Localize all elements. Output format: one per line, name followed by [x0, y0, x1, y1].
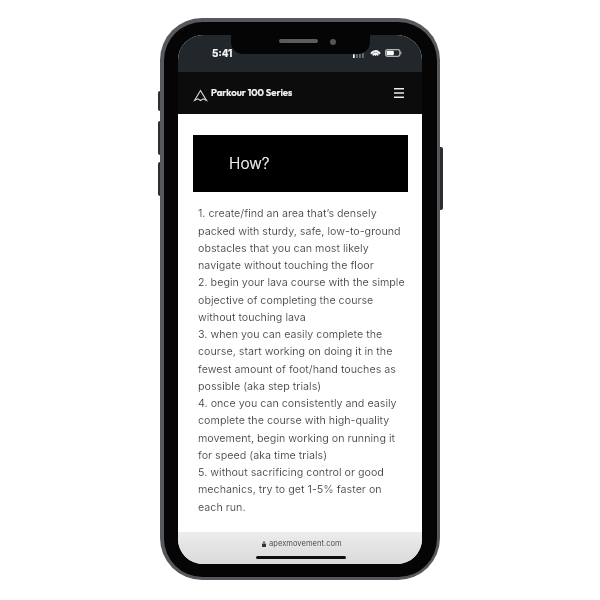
- staticText: 1. create/find an area that’s densely: [198, 207, 377, 220]
- staticText: without touching lava: [198, 311, 306, 324]
- staticText: movement, begin working on running it: [198, 432, 396, 445]
- staticText: navigate without touching the floor: [198, 259, 374, 272]
- staticText: 4. once you can consistently and easily: [198, 397, 397, 410]
- staticText: objective of completing the course: [198, 294, 374, 307]
- staticText: possible (aka step trials): [198, 380, 322, 393]
- staticText: 2. begin your lava course with the simpl…: [198, 276, 405, 289]
- staticText: How?: [229, 154, 270, 173]
- button[interactable]: How?: [193, 135, 408, 192]
- staticText: obstacles that you can most likely: [198, 242, 369, 255]
- staticText: 5. without sacrificing control or good: [198, 466, 384, 479]
- staticText: course, start working on doing it in the: [198, 345, 393, 358]
- button[interactable]: Parkour 100 Series: [194, 85, 294, 97]
- staticText: apexmovement.com: [269, 539, 342, 548]
- staticText: Parkour 100 Series: [211, 86, 293, 98]
- staticText: 5:41: [212, 47, 233, 59]
- button[interactable]: Open navigation menu: [387, 81, 411, 105]
- staticText: 3. when you can easily complete the: [198, 328, 383, 341]
- staticText: complete the course with high-quality: [198, 414, 390, 427]
- staticText: each run.: [198, 501, 246, 514]
- staticText: mechanics, try to get 1-5% faster on: [198, 483, 382, 496]
- staticText: for speed (aka time trials): [198, 449, 328, 462]
- staticText: fewest amount of foot/hand touches as: [198, 363, 396, 376]
- staticText: packed with sturdy, safe, low-to-ground: [198, 225, 401, 238]
